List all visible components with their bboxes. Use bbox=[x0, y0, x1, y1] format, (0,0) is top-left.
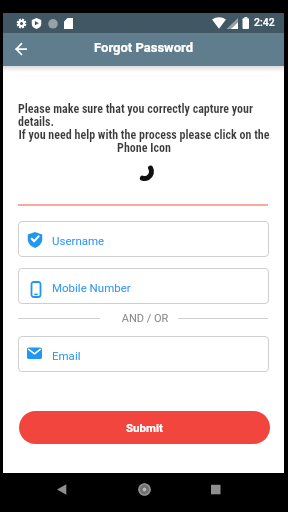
staticText: Forgot Password bbox=[3, 40, 284, 55]
staticText: Email bbox=[52, 349, 81, 362]
button[interactable]: Email bbox=[18, 336, 269, 372]
button[interactable] bbox=[7, 39, 33, 61]
staticText: Please make sure that you correctly capt… bbox=[18, 102, 270, 129]
button[interactable]: Mobile Number bbox=[18, 268, 269, 304]
button[interactable]: Submit bbox=[19, 411, 270, 444]
staticText: 2:42 bbox=[254, 16, 275, 28]
staticText: Submit bbox=[126, 421, 163, 434]
button[interactable]: Username bbox=[18, 221, 269, 257]
staticText: Username bbox=[52, 234, 105, 247]
staticText: If you need help with the process please… bbox=[18, 128, 270, 155]
button[interactable] bbox=[129, 478, 159, 500]
button[interactable] bbox=[47, 478, 77, 500]
staticText: Mobile Number bbox=[52, 281, 131, 294]
button[interactable] bbox=[200, 478, 230, 500]
button[interactable] bbox=[131, 158, 158, 185]
staticText: AND / OR bbox=[110, 312, 180, 325]
